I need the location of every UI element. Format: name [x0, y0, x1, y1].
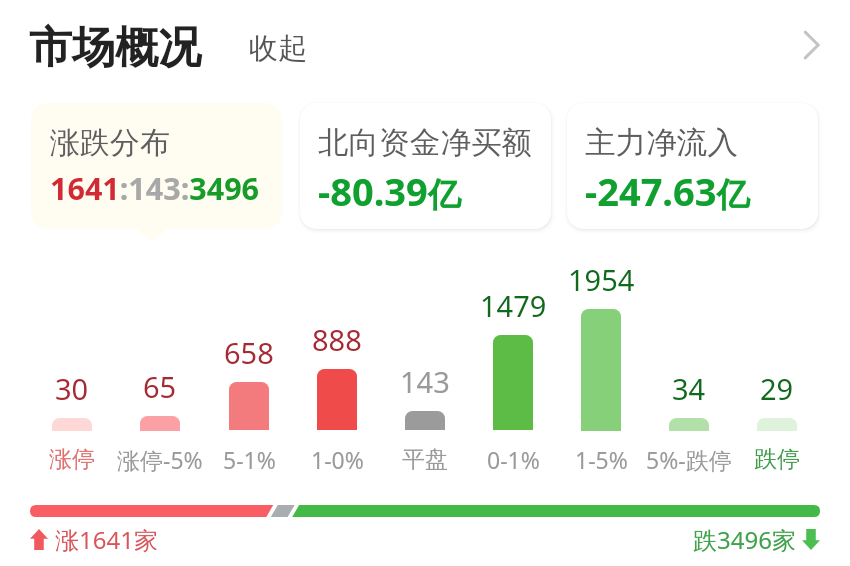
button[interactable]: 0-1% [448, 444, 578, 474]
staticText: 收起 [249, 30, 307, 67]
staticText: -247.63亿 [585, 165, 750, 217]
staticText: 涨1641家 [55, 523, 158, 556]
other: 下跌 [802, 529, 820, 550]
staticText: 平盘 [402, 445, 448, 474]
staticText: 658 [224, 333, 274, 365]
button[interactable]: 涨停 [7, 444, 137, 474]
staticText: 涨停 [49, 445, 95, 474]
button[interactable]: 北向资金净买额 [300, 103, 551, 229]
staticText: 主力净流入 [585, 124, 738, 163]
button[interactable]: 主力净流入 [567, 103, 818, 229]
button[interactable]: 涨跌分布 [31, 103, 282, 229]
staticText: 1954 [568, 260, 635, 292]
staticText: 市场概况 [29, 21, 201, 75]
button[interactable]: 5-1% [184, 444, 314, 474]
staticText: 涨停-5% [117, 444, 203, 474]
staticText: 涨跌分布 [50, 124, 170, 162]
staticText: 北向资金净买额 [318, 124, 533, 163]
staticText: 888 [312, 320, 362, 352]
staticText: 跌停 [754, 445, 800, 474]
staticText: 34 [672, 369, 706, 401]
button[interactable]: 收起 [249, 30, 307, 67]
button[interactable]: 跌3496家 [693, 523, 820, 556]
staticText: 1641:143:3496 [50, 167, 260, 209]
staticText: -80.39亿 [318, 165, 461, 217]
button[interactable]: 市场概况 [29, 21, 201, 75]
button[interactable]: 查看更多 [781, 16, 839, 74]
staticText: 65 [143, 367, 177, 399]
staticText: 30 [55, 369, 89, 401]
staticText: 跌3496家 [693, 523, 796, 556]
staticText: 5-1% [223, 444, 276, 474]
staticText: 29 [760, 369, 794, 401]
button[interactable]: 平盘 [360, 444, 490, 474]
staticText: 1-5% [575, 444, 628, 474]
staticText: 5%-跌停 [646, 444, 732, 474]
staticText: 1479 [480, 286, 547, 318]
staticText: 0-1% [487, 444, 540, 474]
staticText: 143 [400, 362, 450, 394]
button[interactable]: 跌停 [712, 444, 842, 474]
button[interactable]: 上涨 [30, 523, 158, 556]
staticText: 1-0% [311, 444, 364, 474]
button[interactable]: 1-0% [272, 444, 402, 474]
button[interactable]: 5%-跌停 [624, 444, 754, 474]
button[interactable]: 涨停-5% [95, 444, 225, 474]
other: 上涨 [30, 529, 48, 550]
button[interactable]: 1-5% [536, 444, 666, 474]
